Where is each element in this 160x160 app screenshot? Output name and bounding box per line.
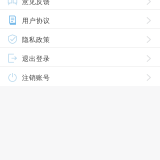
button[interactable]: 注销账号 xyxy=(0,67,160,86)
staticText: 隐私政策 xyxy=(22,36,50,44)
staticText: 意见反馈 xyxy=(22,0,50,6)
button[interactable]: 用户协议 xyxy=(0,10,160,29)
button[interactable]: 隐私政策 xyxy=(0,29,160,48)
staticText: 退出登录 xyxy=(22,55,50,63)
button[interactable]: 退出登录 xyxy=(0,48,160,67)
staticText: 用户协议 xyxy=(22,17,50,25)
button[interactable]: 意见反馈 xyxy=(0,0,160,10)
staticText: 注销账号 xyxy=(22,74,50,82)
